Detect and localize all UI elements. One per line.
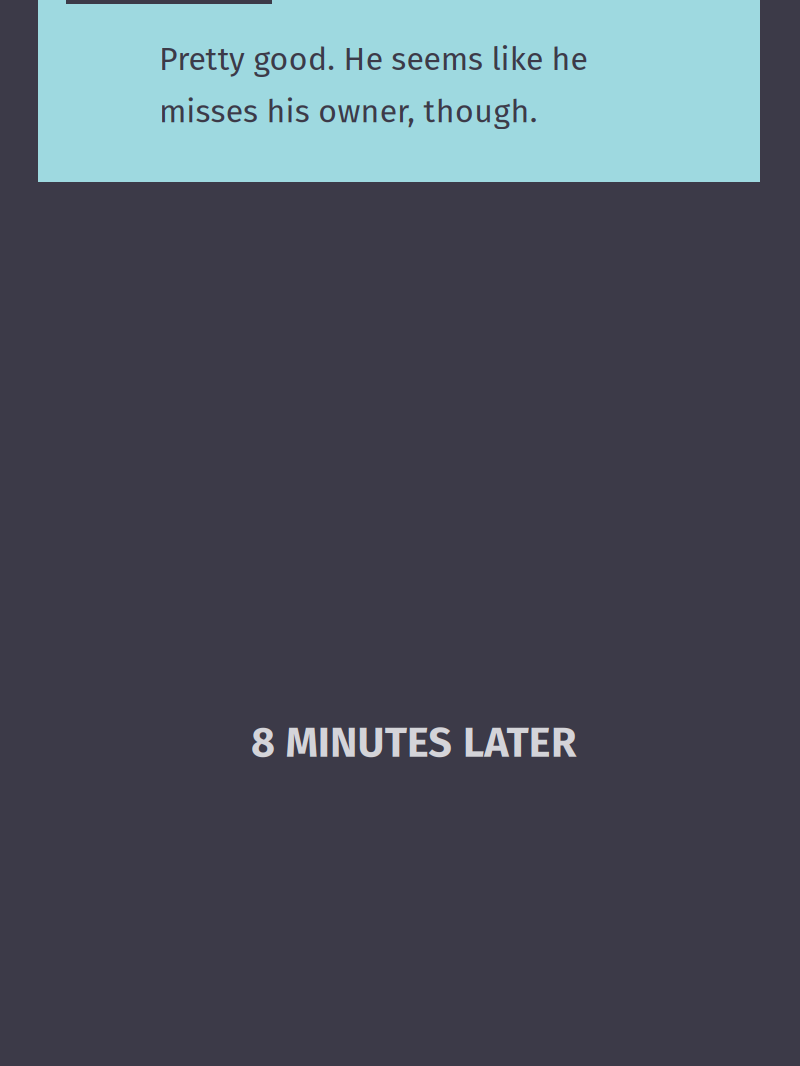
- staticText: misses his owner, though.: [159, 92, 538, 131]
- staticText: 8 MINUTES LATER: [251, 718, 577, 768]
- button[interactable]: 8 MINUTES LATER: [244, 717, 584, 769]
- staticText: Pretty good. He seems like he: [159, 40, 588, 78]
- button[interactable]: Pretty good. He seems like he: [38, 0, 760, 182]
